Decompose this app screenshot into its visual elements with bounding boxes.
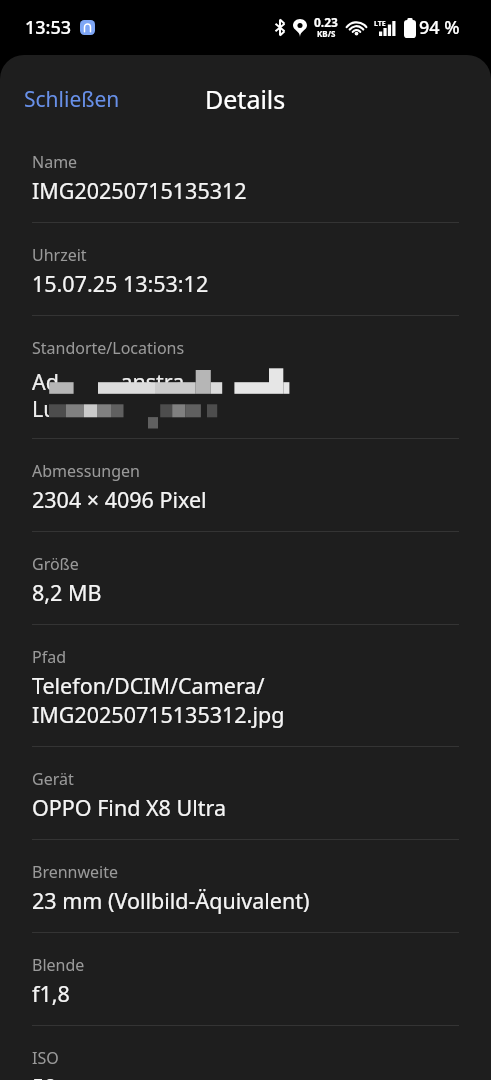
staticText: 50 [32,1072,57,1080]
staticText: 15.07.25 13:53:12 [32,269,209,298]
staticText: 94 % [419,15,460,40]
staticText: f1,8 [32,979,70,1008]
staticText: Lu [32,394,57,423]
staticText: ISO [32,1047,59,1069]
staticText: 23 mm (Vollbild-Äquivalent) [32,886,310,915]
staticText: Brennweite [32,861,119,883]
staticText: LTE [374,19,386,29]
button[interactable]: Schließen [11,78,133,121]
staticText: 8,2 MB [32,578,102,607]
staticText: Abmessungen [32,460,140,482]
staticText: Standorte/Locations [32,337,185,359]
button[interactable]: Abmessungen [0,439,491,531]
staticText: Größe [32,553,79,575]
staticText: OPPO Find X8 Ultra [32,793,227,822]
staticText: KB/S [317,28,336,39]
staticText: Pfad [32,646,67,668]
button[interactable]: Standorte/Locations [0,316,491,438]
staticText: IMG20250715135312 [32,176,247,205]
button[interactable]: Brennweite [0,840,491,932]
staticText: Details [205,82,286,116]
staticText: Ad anstra [32,367,185,396]
button[interactable]: Blende [0,933,491,1025]
staticText: 2304 × 4096 Pixel [32,485,207,514]
staticText: 13:53 [25,15,72,40]
button[interactable]: Name [0,130,491,222]
staticText: Blende [32,954,85,976]
staticText: IMG20250715135312.jpg [32,700,285,729]
staticText: Gerät [32,768,74,790]
staticText: 0.23 [314,14,338,30]
staticText: Schließen [24,85,120,114]
staticText: Name [32,151,78,173]
staticText: Telefon/DCIM/Camera/ [32,671,265,700]
button[interactable]: Größe [0,532,491,624]
button[interactable]: Pfad [0,625,491,746]
button[interactable]: Uhrzeit [0,223,491,315]
staticText: Uhrzeit [32,244,87,266]
button[interactable]: Gerät [0,747,491,839]
button[interactable]: ISO [0,1026,491,1080]
